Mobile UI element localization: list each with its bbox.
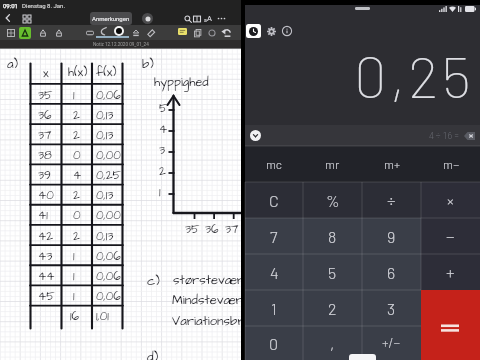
staticText: + xyxy=(446,262,455,282)
button[interactable]: History xyxy=(246,24,261,38)
button[interactable]: Equals xyxy=(421,326,480,360)
button[interactable]: 9 xyxy=(362,218,421,254)
button[interactable]: Brush xyxy=(97,25,110,38)
button[interactable]: 7 xyxy=(245,218,303,254)
staticText: b) xyxy=(142,55,154,73)
staticText: 42 xyxy=(38,228,54,245)
staticText: 8 xyxy=(328,227,337,246)
button[interactable]: Settings xyxy=(264,24,278,38)
staticText: 35 xyxy=(38,87,53,104)
staticText: 0 xyxy=(73,207,81,224)
staticText: c) xyxy=(147,272,160,290)
button[interactable]: Pen tool xyxy=(19,27,31,39)
staticText: 4 xyxy=(270,263,279,282)
staticText: 39 xyxy=(38,167,51,184)
staticText: h(x) xyxy=(68,64,88,81)
button[interactable]: × xyxy=(421,182,480,218)
staticText: 5 xyxy=(328,263,337,282)
button[interactable]: Pen xyxy=(36,26,49,39)
staticText: C xyxy=(269,191,279,210)
staticText: 0,06 xyxy=(96,248,121,265)
staticText: 0,00 xyxy=(96,147,121,164)
button[interactable]: a xyxy=(202,12,214,24)
button[interactable]: + xyxy=(421,254,480,290)
staticText: mr xyxy=(325,157,340,171)
button[interactable]: More options xyxy=(215,12,228,25)
button[interactable]: Search xyxy=(181,12,194,25)
staticText: 2 xyxy=(73,228,80,245)
button[interactable]: Insert table xyxy=(4,26,17,39)
staticText: 45 xyxy=(38,288,55,305)
staticText: m+ xyxy=(384,157,400,171)
button[interactable]: 6 xyxy=(362,254,421,290)
staticText: 2 xyxy=(73,127,80,144)
button[interactable]: Ink colour xyxy=(114,26,124,36)
staticText: % xyxy=(326,191,340,210)
staticText: × xyxy=(447,191,454,210)
staticText: +/− xyxy=(382,335,401,351)
staticText: a) xyxy=(7,55,19,73)
staticText: Variationsbredde xyxy=(172,312,272,330)
button[interactable]: Anmerkungen xyxy=(90,12,132,25)
button[interactable]: Eraser xyxy=(144,26,157,39)
button[interactable]: Info xyxy=(280,24,294,38)
button[interactable]: , xyxy=(303,326,362,360)
staticText: 0,06 xyxy=(96,288,121,305)
button[interactable]: Undo xyxy=(219,26,232,39)
button[interactable]: Pen xyxy=(52,26,65,39)
staticText: 7 xyxy=(270,227,278,246)
staticText: ÷ xyxy=(387,190,396,210)
button[interactable]: Library xyxy=(190,12,203,25)
button[interactable]: Sticky note xyxy=(178,28,187,35)
staticText: x xyxy=(43,65,49,82)
button[interactable]: Pages xyxy=(20,12,33,25)
button[interactable]: m+ xyxy=(362,146,421,182)
staticText: − xyxy=(446,226,455,246)
button[interactable]: +/− xyxy=(362,326,421,360)
button[interactable]: Back xyxy=(2,12,14,24)
button[interactable]: Shapes xyxy=(205,26,218,39)
button[interactable]: Show history xyxy=(250,130,261,141)
button[interactable]: Equals xyxy=(421,290,480,326)
button[interactable]: − xyxy=(421,218,480,254)
staticText: 1,01 xyxy=(96,308,109,325)
button[interactable]: New page xyxy=(142,13,153,24)
button[interactable]: m− xyxy=(421,146,480,182)
button[interactable]: Selection xyxy=(83,26,96,39)
button[interactable]: C xyxy=(245,182,303,218)
staticText: 6 xyxy=(387,263,396,282)
button[interactable]: mc xyxy=(245,146,303,182)
button[interactable]: 8 xyxy=(303,218,362,254)
staticText: 36 xyxy=(205,221,219,238)
staticText: hyppighed xyxy=(154,74,209,91)
button[interactable]: mr xyxy=(303,146,362,182)
staticText: a xyxy=(204,17,207,23)
staticText: 1 xyxy=(73,248,75,265)
button[interactable]: % xyxy=(303,182,362,218)
staticText: 1 xyxy=(73,87,75,104)
staticText: 0,13 xyxy=(96,228,114,245)
staticText: f(x) xyxy=(96,64,117,81)
staticText: Anmerkungen xyxy=(92,15,130,22)
staticText: 0,25 xyxy=(354,40,474,110)
button[interactable]: 5 xyxy=(303,254,362,290)
button[interactable]: 4 xyxy=(245,254,303,290)
button[interactable]: Backspace xyxy=(463,129,476,142)
button[interactable]: Copy xyxy=(191,26,204,39)
button[interactable]: Highlighter xyxy=(129,26,142,39)
staticText: 1 xyxy=(73,268,75,285)
button[interactable]: 1 xyxy=(245,290,303,326)
staticText: d) xyxy=(147,348,159,360)
staticText: 0,06 xyxy=(96,268,121,285)
staticText: 0,25 xyxy=(96,167,122,184)
button[interactable]: 2 xyxy=(303,290,362,326)
button[interactable]: ÷ xyxy=(362,182,421,218)
staticText: 16 xyxy=(70,308,80,325)
staticText: Notiz 12.12.2020 09_01_24 xyxy=(93,42,149,47)
button[interactable]: 0 xyxy=(245,326,303,360)
staticText: 1 xyxy=(73,288,75,305)
staticText: 0,13 xyxy=(96,127,114,144)
staticText: 43 xyxy=(38,248,53,265)
staticText: 0,06 xyxy=(96,87,121,104)
button[interactable]: 3 xyxy=(362,290,421,326)
